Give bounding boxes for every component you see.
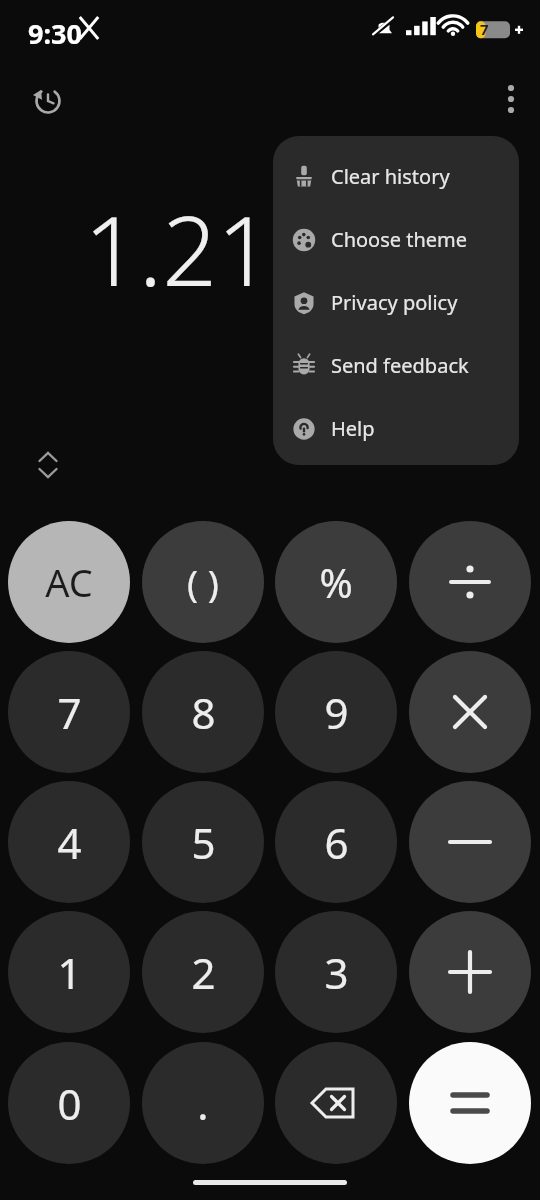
staticText: %: [319, 555, 353, 609]
staticText: Help: [331, 415, 375, 442]
button[interactable]: Expand: [26, 443, 70, 487]
button[interactable]: 2: [142, 911, 264, 1033]
staticText: 9: [324, 684, 349, 741]
button[interactable]: Divide: [409, 521, 531, 643]
button[interactable]: 0: [8, 1042, 130, 1164]
staticText: 9:30: [28, 15, 82, 52]
staticText: 6: [324, 814, 349, 871]
staticText: 1: [57, 944, 82, 1001]
button[interactable]: Multiply: [409, 651, 531, 773]
staticText: .: [197, 1075, 209, 1132]
button[interactable]: More options: [489, 77, 533, 121]
staticText: 1.21: [84, 183, 272, 314]
button[interactable]: 9: [275, 651, 397, 773]
button[interactable]: 3: [275, 911, 397, 1033]
button[interactable]: 5: [142, 781, 264, 903]
button[interactable]: 1: [8, 911, 130, 1033]
staticText: 7: [57, 684, 82, 741]
button[interactable]: %: [275, 521, 397, 643]
staticText: 0: [57, 1075, 82, 1132]
button[interactable]: History: [24, 77, 72, 125]
button[interactable]: Help: [273, 397, 519, 460]
button[interactable]: Backspace: [275, 1042, 397, 1164]
button[interactable]: 7: [8, 651, 130, 773]
button[interactable]: Send feedback: [273, 334, 519, 397]
button[interactable]: Minus: [409, 781, 531, 903]
button[interactable]: .: [142, 1042, 264, 1164]
staticText: 8: [191, 684, 216, 741]
staticText: Privacy policy: [331, 289, 458, 316]
staticText: Clear history: [331, 163, 450, 190]
staticText: 3: [324, 944, 349, 1001]
button[interactable]: Equals: [409, 1042, 531, 1164]
button[interactable]: ( ): [142, 521, 264, 643]
staticText: 4: [57, 814, 82, 871]
staticText: 7: [480, 19, 489, 39]
staticText: AC: [45, 556, 93, 608]
staticText: 2: [191, 944, 216, 1001]
button[interactable]: Plus: [409, 911, 531, 1033]
button[interactable]: 6: [275, 781, 397, 903]
button[interactable]: Privacy policy: [273, 271, 519, 334]
button[interactable]: 8: [142, 651, 264, 773]
staticText: 5: [191, 814, 216, 871]
button[interactable]: Choose theme: [273, 208, 519, 271]
staticText: Send feedback: [331, 352, 469, 379]
staticText: Choose theme: [331, 226, 468, 253]
button[interactable]: AC: [8, 521, 130, 643]
button[interactable]: Clear history: [273, 145, 519, 208]
staticText: ( ): [187, 557, 219, 607]
button[interactable]: 4: [8, 781, 130, 903]
